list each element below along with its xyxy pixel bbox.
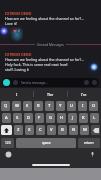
button[interactable]: Emoji keyboard xyxy=(5,151,12,158)
button[interactable]: M xyxy=(80,125,89,135)
button[interactable]: L xyxy=(90,113,99,123)
button[interactable]: O xyxy=(89,101,98,111)
staticText: Y xyxy=(59,103,62,109)
button[interactable]: W xyxy=(12,101,21,111)
button[interactable]: S xyxy=(13,113,22,123)
staticText: I xyxy=(82,103,84,109)
staticText: K xyxy=(82,115,85,121)
staticText: return xyxy=(84,141,94,145)
staticText: 123 xyxy=(5,141,11,145)
button[interactable]: V xyxy=(47,125,56,135)
staticText: F xyxy=(38,115,41,121)
staticText: EXTREME DEMO xyxy=(5,52,32,57)
button[interactable]: 123 xyxy=(1,138,14,148)
staticText: B xyxy=(61,127,64,133)
staticText: T xyxy=(48,103,51,109)
staticText: Love it! xyxy=(5,21,17,26)
button[interactable]: return xyxy=(78,138,100,148)
staticText: M xyxy=(83,127,87,133)
button[interactable]: Y xyxy=(56,101,65,111)
button[interactable]: Gift xyxy=(13,80,18,85)
button[interactable]: C xyxy=(36,125,45,135)
button[interactable]: Q xyxy=(1,101,10,111)
button[interactable]: I'm xyxy=(67,88,101,100)
staticText: E xyxy=(26,103,29,109)
button[interactable]: E xyxy=(23,101,32,111)
staticText: Z xyxy=(17,127,20,133)
staticText: 2 xyxy=(18,29,20,33)
button[interactable]: I xyxy=(78,101,87,111)
staticText: Q xyxy=(4,103,8,109)
button[interactable]: Dictation xyxy=(89,151,96,158)
staticText: space xyxy=(42,141,51,145)
staticText: stuff. Loving it xyxy=(5,67,29,72)
staticText: The xyxy=(47,92,54,97)
staticText: C xyxy=(39,127,42,133)
staticText: J xyxy=(72,115,74,121)
button[interactable]: I xyxy=(0,88,33,100)
staticText: O xyxy=(92,103,96,109)
staticText: Unread Messages xyxy=(37,43,64,47)
staticText: R xyxy=(37,103,40,109)
button[interactable]: Gift xyxy=(2,78,99,87)
staticText: Send a message... xyxy=(21,81,48,85)
staticText: G xyxy=(49,115,53,121)
staticText: S xyxy=(16,115,19,121)
button[interactable]: R xyxy=(34,101,43,111)
staticText: N xyxy=(72,127,76,133)
button[interactable]: Shift xyxy=(1,125,12,135)
staticText: U xyxy=(70,103,74,109)
button[interactable]: A xyxy=(2,113,11,123)
button[interactable]: K xyxy=(79,113,88,123)
staticText: D xyxy=(27,115,31,121)
button[interactable]: space xyxy=(16,138,76,148)
button[interactable]: Backspace xyxy=(91,125,100,135)
button[interactable]: D xyxy=(24,113,33,123)
staticText: X xyxy=(28,127,31,133)
staticText: I'm xyxy=(81,92,87,97)
button[interactable]: X xyxy=(25,125,34,135)
staticText: L xyxy=(93,115,96,121)
button[interactable]: 2 xyxy=(9,27,23,34)
button[interactable]: Sticker xyxy=(84,80,89,85)
button[interactable]: U xyxy=(67,101,76,111)
button[interactable]: B xyxy=(58,125,67,135)
button[interactable]: H xyxy=(57,113,66,123)
staticText: I xyxy=(16,92,18,97)
button[interactable]: T xyxy=(45,101,54,111)
staticText: A xyxy=(5,115,8,121)
button[interactable]: G xyxy=(46,113,55,123)
button[interactable]: The xyxy=(33,88,67,100)
staticText: EXTREME DEMO xyxy=(5,11,32,16)
button[interactable]: Emoji xyxy=(92,80,97,85)
button[interactable]: F xyxy=(35,113,44,123)
staticText: How are we feeling about the channel so … xyxy=(5,57,84,62)
staticText: Holy fuck. This is some real next level xyxy=(5,62,68,67)
button[interactable]: Z xyxy=(14,125,23,135)
button[interactable]: N xyxy=(69,125,78,135)
staticText: V xyxy=(50,127,53,133)
staticText: How are we feeling about the channel so … xyxy=(5,16,84,21)
staticText: H xyxy=(60,115,64,121)
staticText: W xyxy=(15,103,19,109)
button[interactable]: J xyxy=(68,113,77,123)
